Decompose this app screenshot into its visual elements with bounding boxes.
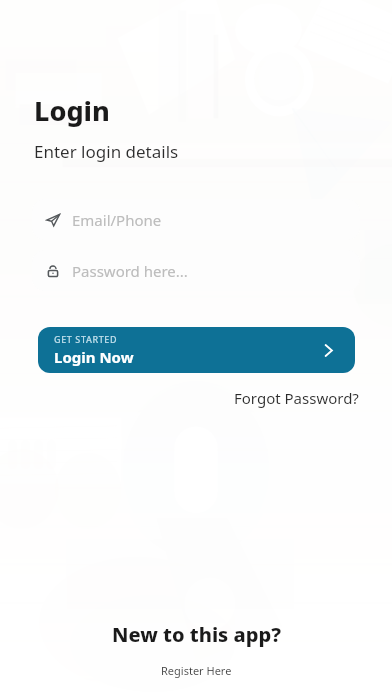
button[interactable]: Forgot Password? — [231, 386, 362, 410]
button[interactable]: Email/Phone — [32, 199, 360, 240]
staticText: Email/Phone — [72, 210, 162, 230]
staticText: GET STARTED — [54, 333, 118, 345]
staticText: New to this app? — [112, 621, 281, 648]
staticText: Login — [34, 92, 110, 129]
staticText: Password here... — [72, 261, 188, 281]
staticText: Register Here — [161, 663, 232, 678]
button[interactable]: Register Here — [155, 661, 238, 680]
button[interactable]: GET STARTED — [38, 327, 355, 373]
staticText: Enter login details — [34, 140, 179, 163]
staticText: Forgot Password? — [234, 388, 359, 408]
button[interactable]: Password here... — [32, 250, 360, 291]
staticText: Login Now — [54, 347, 134, 367]
